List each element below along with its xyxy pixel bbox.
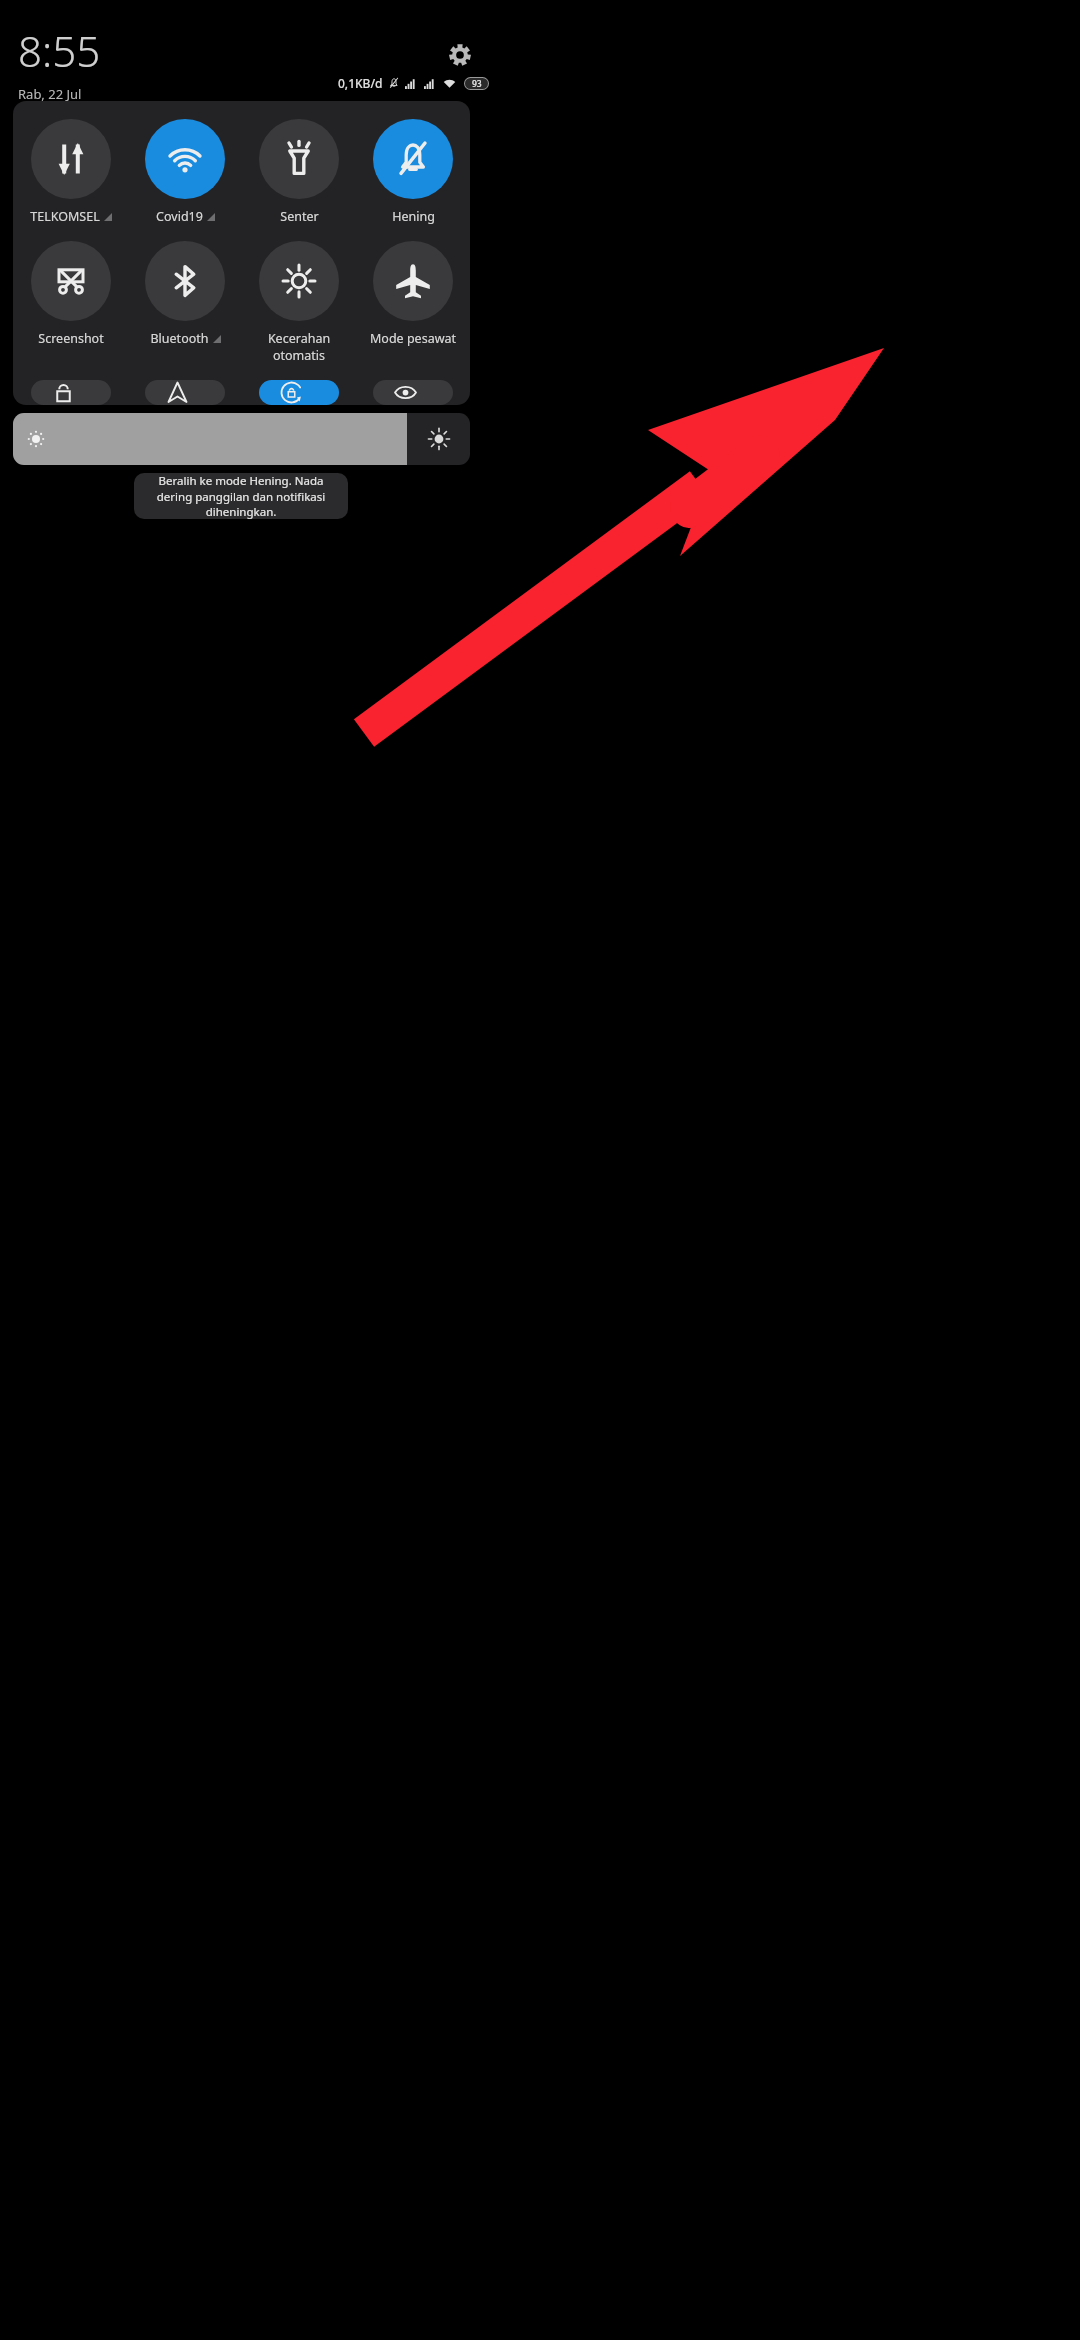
staticText: Screenshot: [38, 330, 104, 347]
staticText: 0,1KB/d: [338, 75, 383, 91]
button[interactable]: GPS: [145, 380, 225, 405]
button[interactable]: Bluetooth: [145, 241, 225, 347]
staticText: Rab, 22 Jul: [18, 85, 82, 103]
staticText: TELKOMSEL: [30, 208, 100, 225]
staticText: Covid19: [156, 208, 203, 225]
staticText: Beralih ke mode Hening. Nada dering pang…: [144, 473, 338, 519]
button[interactable]: Covid19: [145, 119, 225, 225]
staticText: Mode pesawat: [370, 330, 456, 347]
staticText: 93: [472, 78, 482, 89]
button[interactable]: Kecerahan otomatis: [242, 241, 356, 364]
button[interactable]: Senter: [259, 119, 339, 225]
button[interactable]: Brightness: [13, 413, 470, 465]
button[interactable]: Screenshot: [31, 241, 111, 347]
staticText: Bluetooth: [150, 330, 209, 347]
staticText: Kecerahan otomatis: [242, 330, 356, 364]
button[interactable]: Hening: [373, 119, 453, 225]
button[interactable]: Rotasi mati: [259, 380, 339, 405]
staticText: Hening: [392, 208, 435, 225]
button[interactable]: Layar kunci: [31, 380, 111, 405]
staticText: 8:55: [18, 22, 101, 79]
button[interactable]: Mode Baca: [373, 380, 453, 405]
staticText: Senter: [280, 208, 319, 225]
button[interactable]: Mode pesawat: [370, 241, 456, 347]
button[interactable]: Settings: [443, 38, 477, 72]
button[interactable]: TELKOMSEL: [30, 119, 112, 225]
